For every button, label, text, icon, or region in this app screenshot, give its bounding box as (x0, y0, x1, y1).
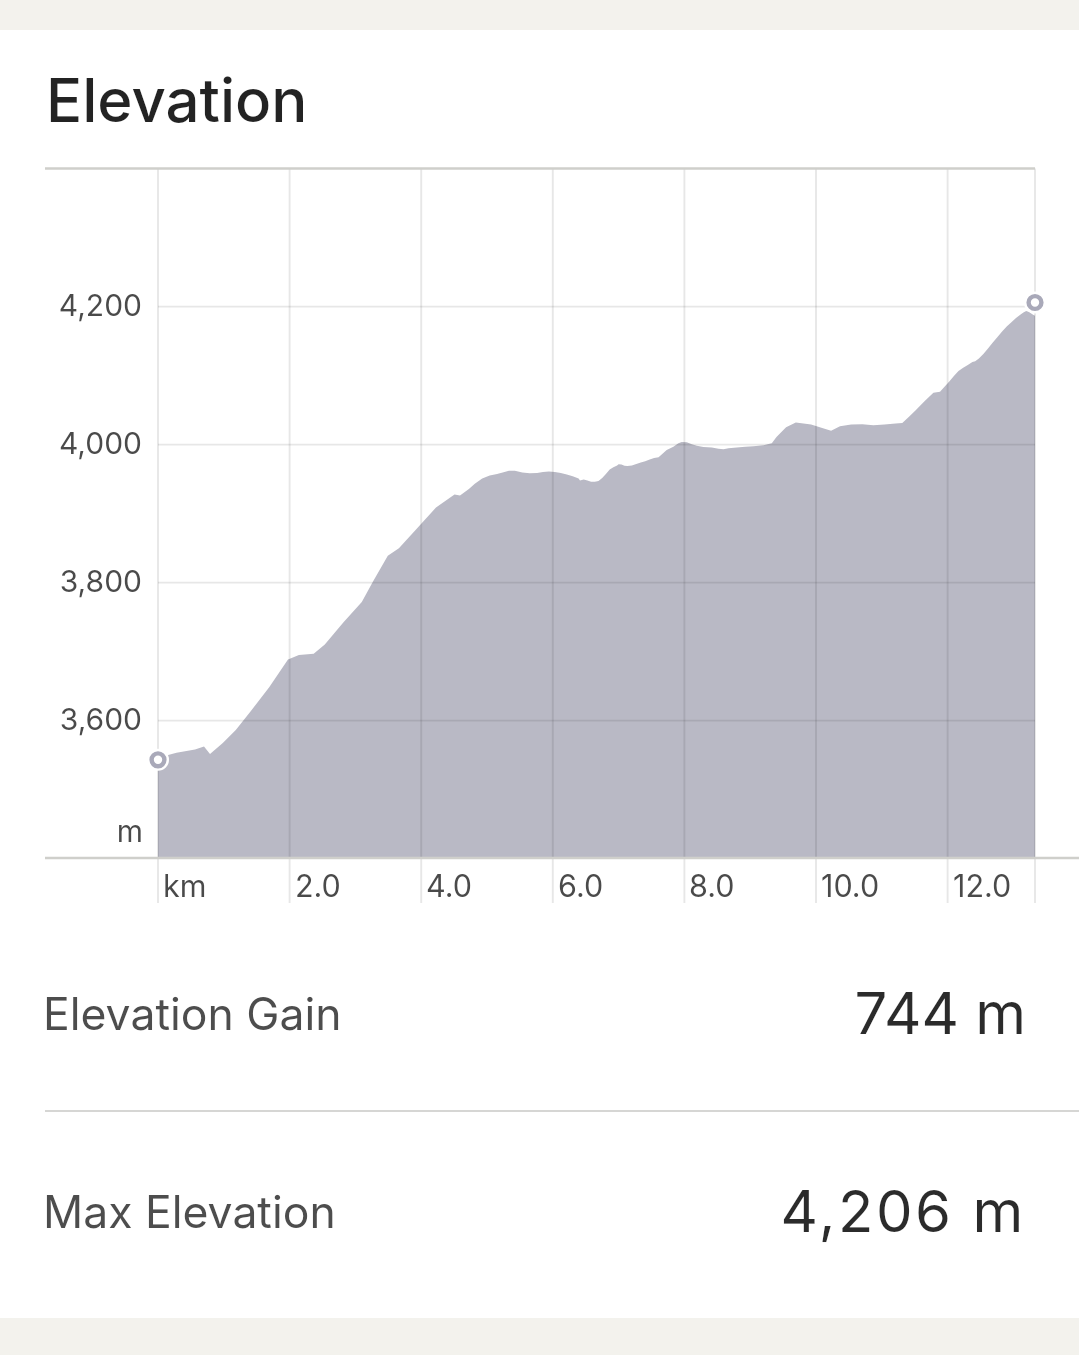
staticText: 3,600 (0, 701, 142, 737)
staticText: 744 m (426, 978, 1026, 1048)
staticText: 4,200 (0, 287, 142, 323)
staticText: Elevation (46, 64, 308, 137)
staticText: km (163, 867, 207, 904)
staticText: 4.0 (426, 867, 472, 904)
staticText: 8.0 (689, 867, 735, 904)
staticText: Max Elevation (43, 1185, 336, 1239)
staticText: 3,800 (0, 563, 142, 599)
staticText: Elevation Gain (43, 987, 342, 1041)
staticText: 10.0 (821, 867, 880, 904)
staticText: 4,000 (0, 425, 142, 461)
button[interactable] (0, 913, 1079, 1111)
staticText: m (0, 813, 143, 849)
staticText: 6.0 (558, 867, 604, 904)
staticText: 4,206 m (426, 1176, 1026, 1246)
staticText: 12.0 (953, 867, 1012, 904)
button[interactable] (0, 1113, 1079, 1311)
staticText: 2.0 (295, 867, 341, 904)
